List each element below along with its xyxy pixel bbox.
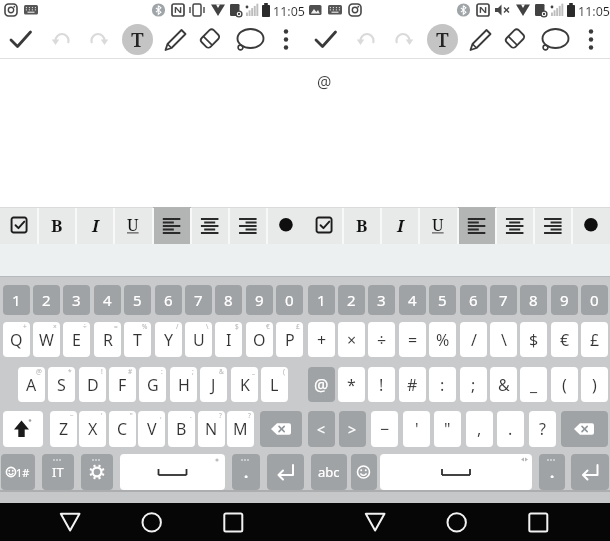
button[interactable]: abc xyxy=(311,454,347,490)
button[interactable] xyxy=(380,454,532,490)
button[interactable]: % xyxy=(429,322,456,357)
button[interactable] xyxy=(81,23,115,57)
button[interactable]: S xyxy=(48,367,75,402)
button[interactable]: IT xyxy=(42,454,74,490)
button[interactable]: + xyxy=(308,322,335,357)
button[interactable] xyxy=(496,207,534,244)
button[interactable]: T xyxy=(427,24,458,55)
button[interactable]: U xyxy=(185,322,212,357)
button[interactable]: 5 xyxy=(124,285,151,315)
button[interactable]: 8 xyxy=(520,285,547,315)
button[interactable] xyxy=(419,207,457,244)
button[interactable] xyxy=(572,207,610,244)
button[interactable] xyxy=(350,23,384,57)
button[interactable] xyxy=(267,454,304,490)
button[interactable] xyxy=(571,454,609,490)
button[interactable]: V xyxy=(138,411,165,447)
button[interactable]: < xyxy=(308,411,335,447)
button[interactable] xyxy=(305,207,343,244)
button[interactable]: G xyxy=(139,367,166,402)
button[interactable] xyxy=(114,207,152,244)
button[interactable]: D xyxy=(79,367,106,402)
button[interactable] xyxy=(45,23,79,57)
button[interactable] xyxy=(38,207,76,244)
button[interactable] xyxy=(3,411,43,447)
button[interactable] xyxy=(0,207,38,244)
button[interactable] xyxy=(260,411,302,447)
button[interactable]: F xyxy=(109,367,136,402)
button[interactable]: 7 xyxy=(185,285,212,315)
button[interactable]: R xyxy=(94,322,121,357)
button[interactable]: > xyxy=(339,411,366,447)
button[interactable] xyxy=(233,23,267,57)
button[interactable] xyxy=(514,503,562,541)
button[interactable]: * xyxy=(338,367,365,402)
button[interactable] xyxy=(267,207,305,244)
button[interactable] xyxy=(191,207,229,244)
button[interactable]: 5 xyxy=(429,285,456,315)
button[interactable]: 6 xyxy=(155,285,182,315)
button[interactable] xyxy=(561,411,608,447)
button[interactable]: M xyxy=(227,411,254,447)
button[interactable]: 2 xyxy=(33,285,60,315)
button[interactable] xyxy=(308,23,342,57)
button[interactable]: / xyxy=(460,322,487,357)
button[interactable]: C xyxy=(109,411,136,447)
button[interactable]: 6 xyxy=(460,285,487,315)
button[interactable]: J xyxy=(200,367,227,402)
button[interactable]: 1 xyxy=(308,285,335,315)
button[interactable]: . xyxy=(232,454,260,490)
button[interactable] xyxy=(351,503,399,541)
button[interactable] xyxy=(425,23,459,57)
button[interactable]: H xyxy=(170,367,197,402)
button[interactable] xyxy=(433,503,481,541)
button[interactable] xyxy=(458,207,496,244)
button[interactable]: & xyxy=(490,367,517,402)
button[interactable]: W xyxy=(33,322,60,357)
button[interactable]: ' xyxy=(403,411,430,447)
button[interactable] xyxy=(343,207,381,244)
button[interactable] xyxy=(81,454,113,490)
button[interactable]: N xyxy=(198,411,225,447)
button[interactable]: # xyxy=(399,367,426,402)
button[interactable]: = xyxy=(399,322,426,357)
button[interactable]: L xyxy=(261,367,288,402)
button[interactable]: T xyxy=(124,322,151,357)
button[interactable] xyxy=(464,23,498,57)
button[interactable] xyxy=(153,207,191,244)
button[interactable] xyxy=(209,503,257,541)
button[interactable]: 3 xyxy=(63,285,90,315)
button[interactable]: B xyxy=(168,411,195,447)
button[interactable] xyxy=(269,23,303,57)
button[interactable] xyxy=(46,503,94,541)
button[interactable]: 7 xyxy=(490,285,517,315)
button[interactable]: 4 xyxy=(94,285,121,315)
button[interactable] xyxy=(351,454,377,490)
button[interactable]: ? xyxy=(529,411,556,447)
button[interactable]: E xyxy=(63,322,90,357)
button[interactable]: 9 xyxy=(551,285,578,315)
button[interactable]: ) xyxy=(581,367,608,402)
button[interactable] xyxy=(120,23,154,57)
button[interactable]: £ xyxy=(581,322,608,357)
button[interactable]: 1 xyxy=(3,285,30,315)
button[interactable] xyxy=(386,23,420,57)
button[interactable]: 8 xyxy=(215,285,242,315)
button[interactable]: : xyxy=(429,367,456,402)
button[interactable] xyxy=(3,23,37,57)
button[interactable] xyxy=(120,454,225,490)
button[interactable] xyxy=(193,23,227,57)
button[interactable]: I xyxy=(215,322,242,357)
button[interactable]: _ xyxy=(520,367,547,402)
button[interactable] xyxy=(538,23,572,57)
button[interactable]: 1# xyxy=(1,454,35,490)
button[interactable]: 9 xyxy=(246,285,273,315)
button[interactable]: ! xyxy=(368,367,395,402)
button[interactable] xyxy=(159,23,193,57)
button[interactable]: \ xyxy=(490,322,517,357)
button[interactable]: Y xyxy=(155,322,182,357)
button[interactable] xyxy=(534,207,572,244)
button[interactable]: € xyxy=(551,322,578,357)
button[interactable]: ( xyxy=(551,367,578,402)
button[interactable]: 0 xyxy=(276,285,303,315)
